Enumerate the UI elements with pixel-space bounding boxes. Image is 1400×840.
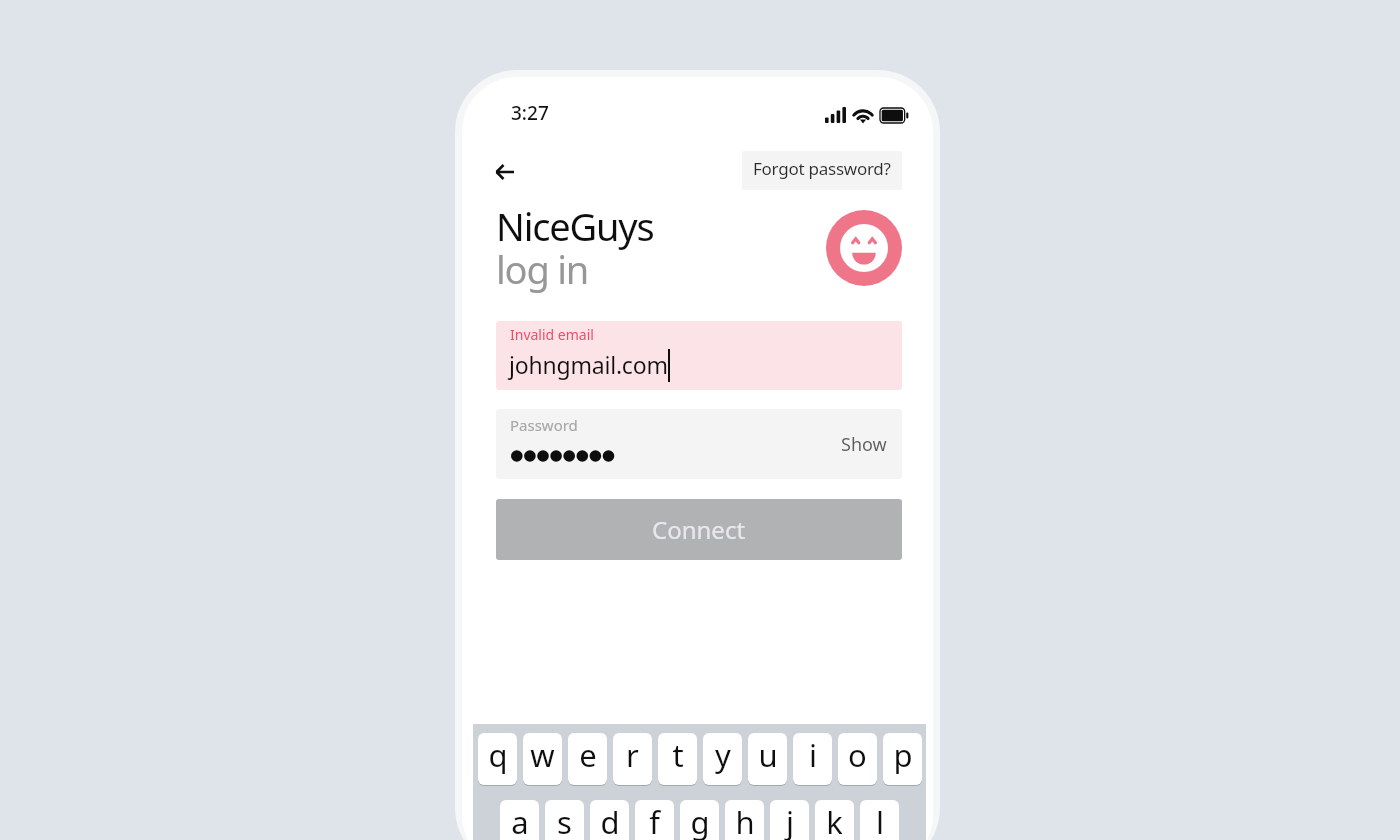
- button[interactable]: p: [883, 733, 922, 785]
- button[interactable]: Invalid email: [496, 321, 902, 390]
- button[interactable]: g: [680, 800, 719, 840]
- staticText: o: [848, 734, 867, 776]
- staticText: 3:27: [511, 100, 549, 126]
- button[interactable]: l: [860, 800, 899, 840]
- staticText: g: [690, 801, 710, 840]
- staticText: s: [557, 801, 572, 840]
- button[interactable]: t: [658, 733, 697, 785]
- button[interactable]: k: [815, 800, 854, 840]
- button[interactable]: e: [568, 733, 607, 785]
- staticText: f: [649, 801, 660, 840]
- staticText: e: [579, 734, 597, 776]
- staticText: Connect: [652, 513, 746, 546]
- staticText: q: [488, 734, 508, 776]
- button[interactable]: j: [770, 800, 809, 840]
- staticText: r: [626, 734, 639, 776]
- staticText: Password: [510, 415, 578, 435]
- button[interactable]: q: [478, 733, 517, 785]
- staticText: k: [826, 801, 843, 840]
- button[interactable]: u: [748, 733, 787, 785]
- staticText: j: [786, 801, 794, 840]
- button[interactable]: w: [523, 733, 562, 785]
- button[interactable]: y: [703, 733, 742, 785]
- button[interactable]: o: [838, 733, 877, 785]
- button[interactable]: Show: [826, 420, 902, 469]
- button[interactable]: Back: [485, 150, 529, 194]
- staticText: p: [893, 734, 913, 776]
- staticText: log in: [496, 243, 589, 295]
- button[interactable]: a: [500, 800, 539, 840]
- button[interactable]: s: [545, 800, 584, 840]
- staticText: johngmail.com: [509, 349, 668, 380]
- staticText: NiceGuys: [496, 200, 654, 252]
- staticText: i: [809, 734, 817, 776]
- button[interactable]: f: [635, 800, 674, 840]
- staticText: a: [511, 801, 529, 840]
- button[interactable]: h: [725, 800, 764, 840]
- staticText: Forgot password?: [753, 157, 891, 180]
- button[interactable]: i: [793, 733, 832, 785]
- staticText: Invalid email: [510, 325, 594, 344]
- button[interactable]: d: [590, 800, 629, 840]
- staticText: l: [876, 801, 884, 840]
- staticText: y: [715, 734, 731, 776]
- button[interactable]: Password: [496, 409, 902, 479]
- staticText: u: [758, 734, 778, 776]
- button[interactable]: Profile avatar: [826, 210, 902, 286]
- staticText: Show: [841, 432, 887, 457]
- staticText: h: [735, 801, 755, 840]
- staticText: w: [530, 734, 555, 776]
- button[interactable]: Forgot password?: [742, 151, 902, 190]
- button[interactable]: r: [613, 733, 652, 785]
- staticText: d: [600, 801, 620, 840]
- staticText: t: [672, 734, 684, 776]
- button[interactable]: Connect: [496, 499, 902, 560]
